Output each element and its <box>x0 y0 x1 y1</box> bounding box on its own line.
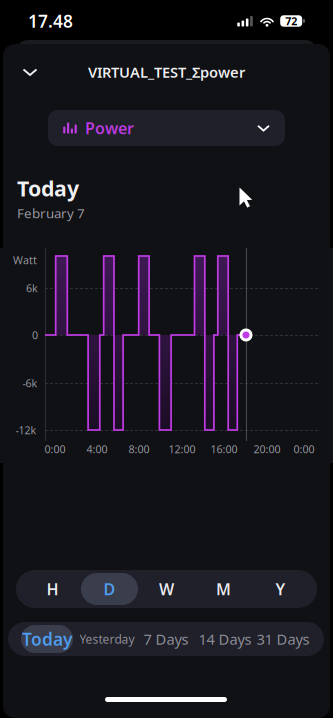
staticText: VIRTUAL_TEST_Σpower <box>88 62 245 82</box>
staticText: Power <box>85 117 134 139</box>
button[interactable]: Yesterday <box>81 625 133 653</box>
staticText: 8:00 <box>128 442 149 456</box>
button[interactable]: M <box>195 573 252 605</box>
button[interactable]: Today <box>21 625 73 653</box>
staticText: W <box>159 578 174 600</box>
staticText: H <box>46 578 58 600</box>
staticText: Watt <box>13 253 37 267</box>
staticText: 72 <box>285 14 297 28</box>
staticText: 6k <box>26 281 38 295</box>
staticText: 16:00 <box>210 442 237 456</box>
staticText: 7 Days <box>143 629 188 649</box>
staticText: 31 Days <box>256 629 309 649</box>
button[interactable]: Y <box>252 573 309 605</box>
staticText: Y <box>275 578 285 600</box>
staticText: Today <box>17 174 79 202</box>
button[interactable]: Power <box>48 110 285 146</box>
button[interactable]: 7 Days <box>141 625 191 653</box>
staticText: 4:00 <box>86 442 107 456</box>
staticText: M <box>216 578 231 600</box>
staticText: -12k <box>15 423 36 437</box>
staticText: 0:00 <box>293 442 314 456</box>
staticText: 12:00 <box>168 442 195 456</box>
staticText: -6k <box>22 376 37 390</box>
staticText: Today <box>22 627 72 650</box>
button[interactable]: W <box>138 573 195 605</box>
staticText: D <box>103 578 115 600</box>
staticText: 14 Days <box>198 629 251 649</box>
button[interactable]: H <box>24 573 81 605</box>
button[interactable]: 14 Days <box>197 625 253 653</box>
button[interactable]: D <box>81 573 138 605</box>
staticText: 0:00 <box>44 442 65 456</box>
button[interactable]: Close <box>8 52 52 92</box>
staticText: Yesterday <box>79 631 134 647</box>
staticText: 17.48 <box>28 9 73 32</box>
staticText: 0 <box>32 328 38 342</box>
staticText: 20:00 <box>253 442 280 456</box>
staticText: February 7 <box>17 204 85 222</box>
button[interactable]: 31 Days <box>255 625 311 653</box>
